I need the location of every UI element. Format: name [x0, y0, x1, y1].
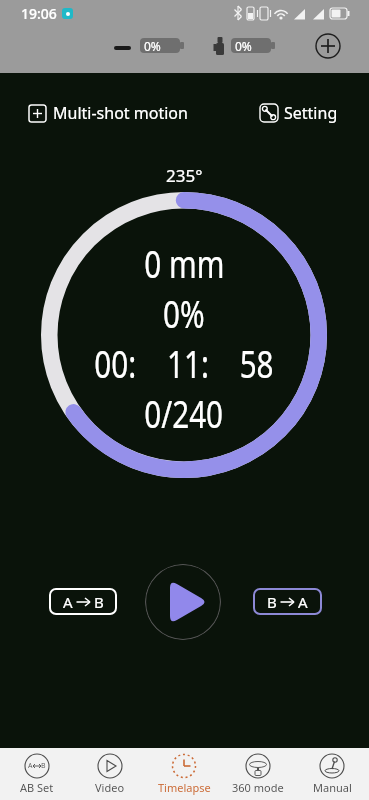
staticText: B [41, 761, 46, 771]
staticText: B [94, 592, 104, 612]
staticText: Video [95, 780, 125, 795]
staticText: 0/240 [144, 387, 224, 439]
button[interactable]: Timelapse [147, 748, 221, 800]
button[interactable] [315, 33, 341, 59]
button[interactable]: Video [73, 748, 147, 800]
staticText: 0% [163, 287, 205, 339]
staticText: A [298, 592, 308, 612]
staticText: 235° [166, 164, 203, 187]
staticText: 0% [144, 38, 161, 53]
button[interactable]: Multi-shot motion [28, 102, 188, 124]
button[interactable]: A [0, 748, 73, 800]
staticText: Setting [284, 102, 338, 124]
staticText: 0% [235, 38, 252, 53]
button[interactable]: 360 mode [221, 748, 295, 800]
staticText: 00: 11: 58 [94, 337, 274, 389]
staticText: 360 mode [232, 780, 284, 795]
staticText: 0 mm [144, 237, 225, 289]
button[interactable]: A [49, 588, 117, 615]
staticText: Multi-shot motion [53, 102, 188, 124]
staticText: 19:06 [21, 4, 57, 23]
staticText: B [267, 592, 277, 612]
button[interactable]: Setting [259, 102, 338, 124]
staticText: Manual [313, 780, 352, 795]
staticText: A [63, 592, 73, 612]
button[interactable] [145, 564, 221, 640]
button[interactable]: Manual [295, 748, 369, 800]
staticText: AB Set [20, 780, 54, 795]
button[interactable]: B [253, 588, 322, 615]
staticText: Timelapse [158, 780, 211, 795]
staticText: A [28, 761, 33, 771]
